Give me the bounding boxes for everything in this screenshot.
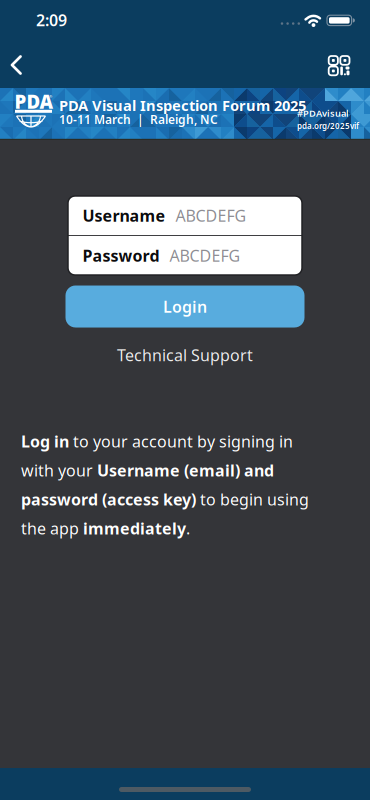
- button[interactable]: Back: [0, 49, 32, 81]
- staticText: #PDAvisual: [297, 107, 349, 119]
- staticText: ABCDEFG: [175, 205, 246, 226]
- button[interactable]: Username: [68, 196, 302, 235]
- staticText: 10-11 March | Raleigh, NC: [59, 111, 218, 127]
- staticText: ABCDEFG: [169, 245, 240, 266]
- button[interactable]: Technical Support: [117, 344, 253, 366]
- staticText: ®: [49, 94, 52, 99]
- button[interactable]: Login: [65, 285, 304, 327]
- staticText: Login: [163, 296, 207, 317]
- staticText: PDA Visual Inspection Forum 2025: [59, 96, 306, 115]
- staticText: 2:09: [36, 9, 67, 31]
- staticText: Technical Support: [117, 344, 253, 366]
- button[interactable]: Scan QR Code: [326, 54, 351, 77]
- staticText: pda.org/2025vif: [297, 120, 359, 131]
- staticText: Username: [82, 205, 165, 226]
- staticText: Password: [82, 245, 159, 266]
- staticText: PDA: [14, 89, 53, 114]
- button[interactable]: Password: [68, 236, 302, 275]
- staticText: Log in to your account by signing in wit…: [21, 431, 309, 539]
